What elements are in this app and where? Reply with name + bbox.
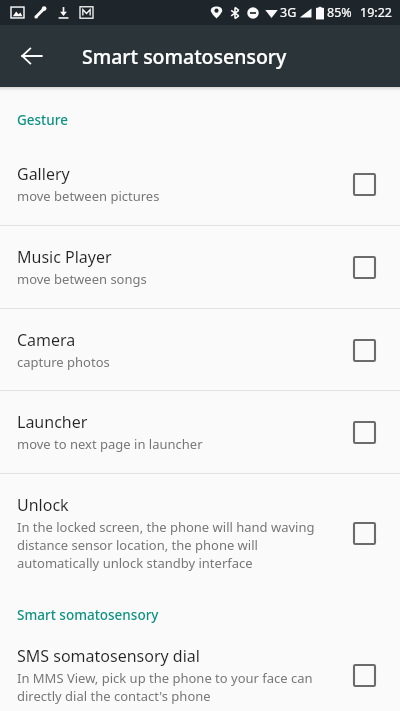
staticText: Unlock xyxy=(17,494,69,516)
button[interactable]: Gallery xyxy=(0,143,400,225)
button[interactable]: Camera xyxy=(0,309,400,390)
button[interactable]: Music Player xyxy=(0,226,400,308)
button[interactable]: Toggle xyxy=(344,330,384,370)
button[interactable]: SMS somatosensory dial xyxy=(0,638,400,711)
button[interactable]: Toggle xyxy=(344,247,384,287)
staticText: Smart somatosensory xyxy=(82,43,287,70)
staticText: move to next page in launcher xyxy=(17,435,203,453)
staticText: In the locked screen, the phone will han… xyxy=(17,518,332,572)
staticText: SMS somatosensory dial xyxy=(17,645,200,667)
button[interactable]: Toggle xyxy=(344,655,384,695)
staticText: move between songs xyxy=(17,270,147,288)
staticText: Music Player xyxy=(17,246,112,268)
staticText: Gallery xyxy=(17,163,70,185)
button[interactable]: Launcher xyxy=(0,391,400,473)
staticText: move between pictures xyxy=(17,187,160,205)
staticText: 3G xyxy=(280,4,297,21)
button[interactable]: Toggle xyxy=(344,412,384,452)
staticText: Gesture xyxy=(17,111,400,129)
staticText: In MMS View, pick up the phone to your f… xyxy=(17,669,332,705)
button[interactable]: Back xyxy=(10,34,54,78)
staticText: Camera xyxy=(17,329,76,351)
staticText: 19:22 xyxy=(360,4,392,21)
button[interactable]: Unlock xyxy=(0,474,400,592)
staticText: capture photos xyxy=(17,353,110,371)
staticText: Smart somatosensory xyxy=(17,606,400,624)
button[interactable]: Toggle xyxy=(344,513,384,553)
button[interactable]: Toggle xyxy=(344,164,384,204)
staticText: Launcher xyxy=(17,411,88,433)
staticText: 85% xyxy=(327,4,352,21)
